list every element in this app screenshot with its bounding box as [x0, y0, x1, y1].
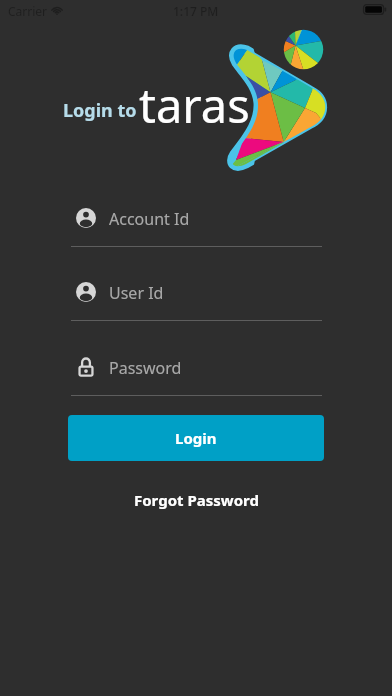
staticText: Login to — [63, 98, 137, 123]
button[interactable]: Account Id — [71, 208, 322, 247]
staticText: Carrier — [8, 3, 48, 19]
staticText: Password — [109, 357, 182, 379]
staticText: Forgot Password — [134, 490, 259, 510]
other: Battery full — [363, 4, 387, 15]
button[interactable]: User Id — [71, 282, 322, 321]
button[interactable]: Forgot Password — [126, 486, 267, 514]
staticText: Account Id — [109, 208, 190, 230]
other: Wi-Fi signal — [50, 4, 64, 15]
button[interactable]: Password — [71, 357, 322, 396]
button[interactable]: Login — [68, 415, 324, 461]
staticText: User Id — [109, 282, 164, 304]
staticText: taras — [139, 73, 250, 137]
staticText: 1:17 PM — [173, 3, 219, 19]
staticText: Login — [175, 428, 217, 448]
